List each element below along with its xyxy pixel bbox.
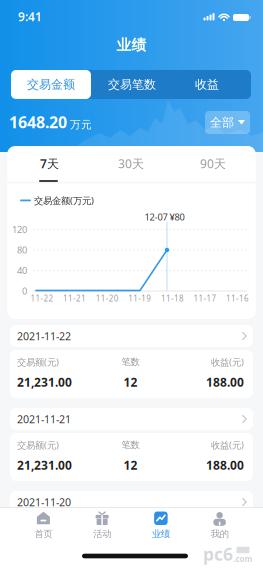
staticText: 80 <box>17 244 27 256</box>
staticText: 90天 <box>200 155 226 171</box>
button[interactable]: 首页 <box>14 511 73 540</box>
staticText: 11-18 <box>161 293 184 304</box>
staticText: 7天 <box>40 155 59 171</box>
staticText: 交易额(元) <box>17 439 59 451</box>
staticText: 2021-11-22 <box>17 329 71 343</box>
staticText: 交易笔数 <box>108 77 156 92</box>
staticText: 11-19 <box>128 293 151 304</box>
button[interactable]: 7天 <box>19 148 79 178</box>
staticText: 12-07 ¥80 <box>144 211 184 223</box>
button[interactable]: 2021-11-21 <box>10 408 253 430</box>
button[interactable]: 30天 <box>101 148 161 178</box>
staticText: 收益(元) <box>211 439 244 451</box>
button[interactable]: 90天 <box>183 148 243 178</box>
staticText: 12 <box>123 374 137 390</box>
staticText: 交易额(元) <box>17 356 59 368</box>
staticText: 11-21 <box>63 293 86 304</box>
button[interactable]: 业绩 <box>131 511 190 540</box>
staticText: 21,231.00 <box>17 374 72 390</box>
button[interactable]: 2021-11-20 <box>10 491 253 513</box>
staticText: pc6 <box>203 542 233 565</box>
staticText: 首页 <box>34 528 52 540</box>
staticText: .com <box>233 554 252 564</box>
staticText: 188.00 <box>206 540 244 556</box>
staticText: 万元 <box>70 118 92 131</box>
staticText: 0 <box>22 285 27 297</box>
staticText: 2021-11-21 <box>17 412 71 426</box>
staticText: 40 <box>17 264 27 277</box>
button[interactable]: 我的 <box>190 511 249 540</box>
button[interactable]: 交易金额 <box>11 70 91 99</box>
staticText: 11-17 <box>193 293 216 304</box>
staticText: 业绩 <box>116 36 146 54</box>
staticText: 11-16 <box>226 293 249 304</box>
staticText: 11-22 <box>30 293 53 304</box>
staticText: 收益(元) <box>211 356 244 368</box>
staticText: 笔数 <box>121 356 139 368</box>
staticText: 活动 <box>93 528 111 540</box>
staticText: 交易额(元) <box>17 522 59 534</box>
staticText: 交易金额 <box>27 77 75 92</box>
staticText: 收益(元) <box>211 522 244 534</box>
button[interactable]: 全部 <box>205 111 250 134</box>
staticText: 9:41 <box>18 8 42 24</box>
staticText: 收益 <box>195 77 219 92</box>
staticText: 30天 <box>118 155 144 171</box>
staticText: 全部 <box>210 115 234 130</box>
staticText: 188.00 <box>206 457 244 473</box>
staticText: 交易金额(万元) <box>34 194 94 207</box>
staticText: 业绩 <box>152 528 170 540</box>
staticText: 11-20 <box>96 293 119 304</box>
staticText: 2021-11-20 <box>17 495 71 509</box>
staticText: 我的 <box>211 528 229 540</box>
staticText: 笔数 <box>121 439 139 451</box>
staticText: 21,231.00 <box>17 457 72 473</box>
staticText: 120 <box>12 223 27 236</box>
staticText: 1648.20 <box>9 111 67 133</box>
button[interactable]: 交易笔数 <box>92 70 172 99</box>
button[interactable]: 收益 <box>167 70 247 99</box>
staticText: 12 <box>123 457 137 473</box>
button[interactable]: 活动 <box>73 511 132 540</box>
button[interactable]: 2021-11-22 <box>10 325 253 347</box>
staticText: 188.00 <box>206 374 244 390</box>
staticText: 12 <box>123 540 137 556</box>
